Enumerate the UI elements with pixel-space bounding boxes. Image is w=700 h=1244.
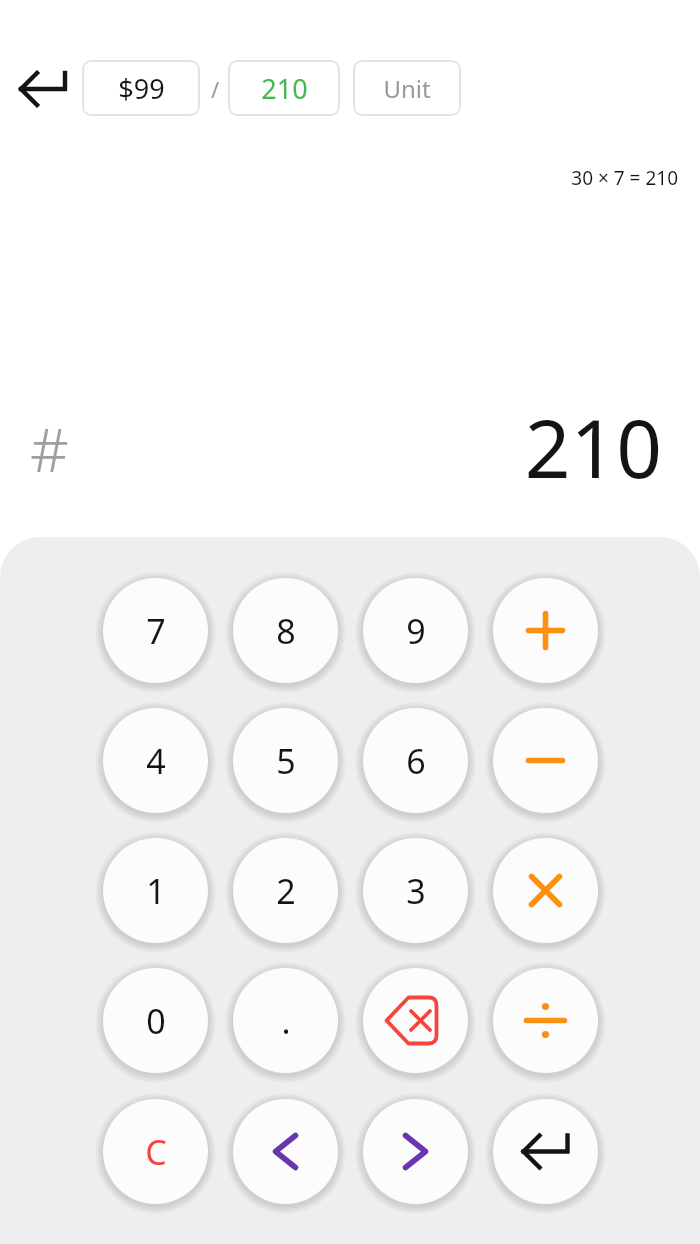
button[interactable]: Enter (493, 1099, 598, 1204)
staticText: 5 (276, 738, 296, 784)
staticText: 7 (146, 608, 166, 654)
button[interactable]: 6 (363, 708, 468, 813)
button[interactable]: Minus (493, 708, 598, 813)
button[interactable]: 1 (103, 838, 208, 943)
button[interactable]: C (103, 1099, 208, 1204)
button[interactable]: 7 (103, 578, 208, 683)
button[interactable]: 4 (103, 708, 208, 813)
staticText: 9 (406, 608, 426, 654)
button[interactable]: Multiply (493, 838, 598, 943)
button[interactable]: 210 (228, 60, 340, 116)
button[interactable]: $99 (82, 60, 200, 116)
button[interactable]: . (233, 968, 338, 1073)
button[interactable]: Unit (353, 60, 461, 116)
staticText: 30 × 7 = 210 (571, 165, 678, 191)
staticText: Unit (383, 72, 431, 105)
staticText: 6 (406, 738, 426, 784)
button[interactable]: 0 (103, 968, 208, 1073)
staticText: / (204, 74, 226, 104)
button[interactable]: Plus (493, 578, 598, 683)
staticText: 0 (146, 998, 166, 1044)
staticText: $99 (118, 70, 165, 107)
staticText: 210 (261, 70, 308, 107)
button[interactable]: 3 (363, 838, 468, 943)
button[interactable]: Backspace (363, 968, 468, 1073)
staticText: C (145, 1129, 167, 1175)
staticText: # (30, 408, 69, 490)
button[interactable]: Next (363, 1099, 468, 1204)
staticText: 8 (276, 608, 296, 654)
staticText: . (281, 998, 291, 1044)
staticText: 210 (524, 392, 662, 501)
staticText: 1 (146, 868, 166, 914)
button[interactable]: 9 (363, 578, 468, 683)
button[interactable]: Divide (493, 968, 598, 1073)
staticText: 4 (146, 738, 166, 784)
button[interactable]: 5 (233, 708, 338, 813)
staticText: 2 (276, 868, 296, 914)
button[interactable]: Previous (233, 1099, 338, 1204)
staticText: 3 (406, 868, 426, 914)
button[interactable]: Back (12, 58, 74, 120)
button[interactable]: 2 (233, 838, 338, 943)
button[interactable]: 8 (233, 578, 338, 683)
